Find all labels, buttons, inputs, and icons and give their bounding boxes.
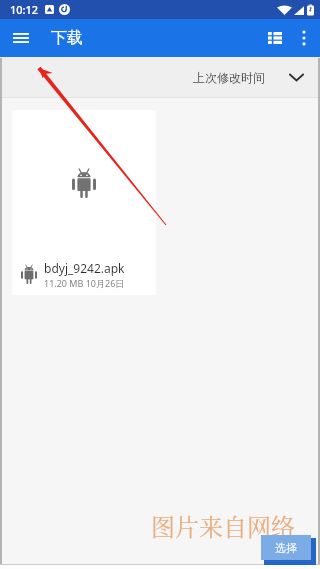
staticText: 下载 [51,28,83,48]
staticText: 10:12 [10,2,39,17]
button[interactable]: bdyj_9242.apk [12,110,156,295]
button[interactable]: 选择 [261,535,311,560]
staticText: 选择 [275,541,297,555]
button[interactable]: Open navigation drawer [0,19,41,57]
button[interactable]: 上次修改时间 [179,62,316,93]
staticText: 11.20 MB 10月26日 [44,277,125,289]
button[interactable]: More options [288,19,320,57]
button[interactable]: Switch view mode [261,19,288,57]
staticText: bdyj_9242.apk [44,260,125,276]
staticText: 图片来自网络 [151,508,295,542]
staticText: 上次修改时间 [193,70,265,85]
